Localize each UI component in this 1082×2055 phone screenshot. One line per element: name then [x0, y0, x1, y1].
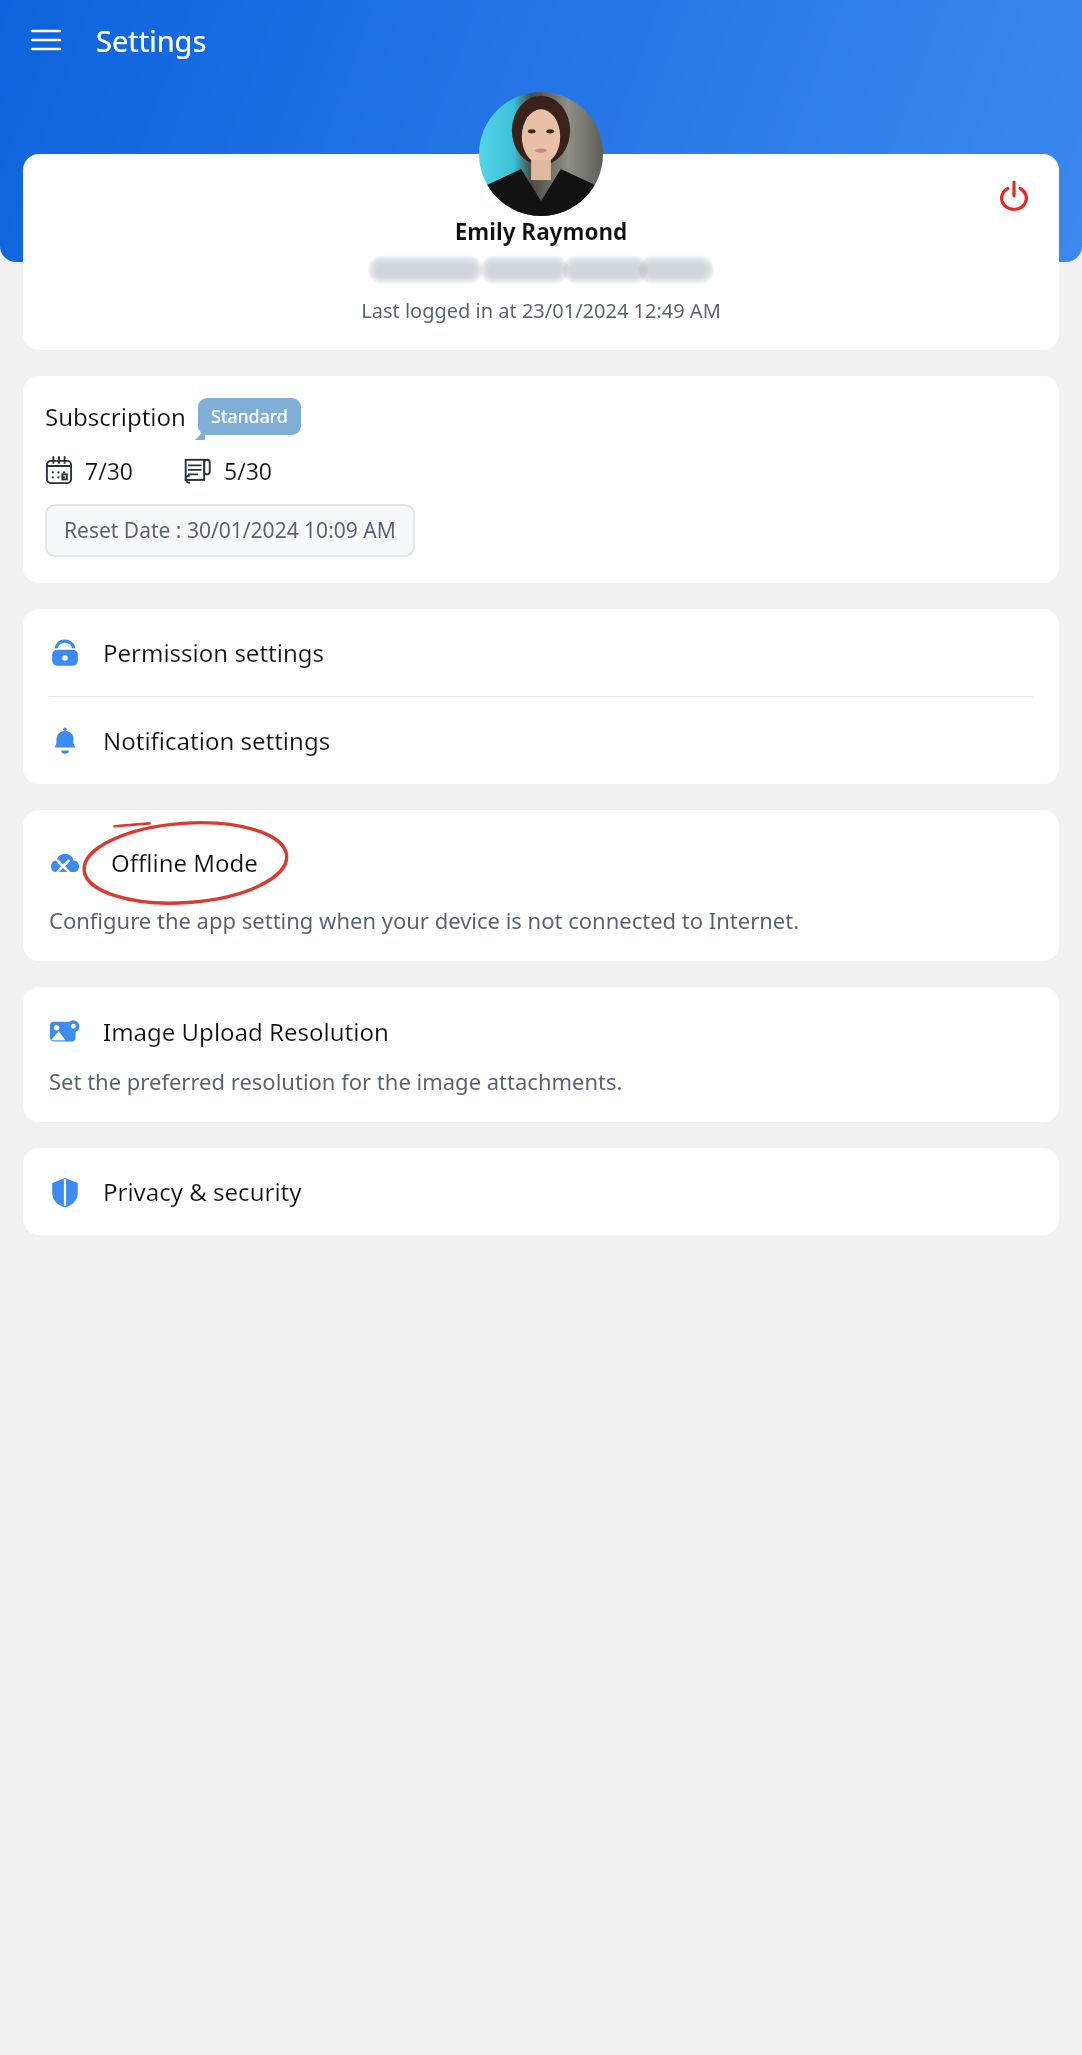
staticText: Set the preferred resolution for the ima…: [49, 1066, 623, 1096]
staticText: Last logged in at 23/01/2024 12:49 AM: [23, 297, 1059, 324]
button[interactable]: Emily Raymond: [23, 154, 1059, 350]
staticText: Image Upload Resolution: [103, 1015, 389, 1048]
button[interactable]: Privacy & security: [23, 1148, 1059, 1235]
staticText: 7/30: [85, 455, 134, 486]
button[interactable]: Notification settings: [23, 697, 1059, 784]
staticText: Permission settings: [103, 636, 325, 669]
button[interactable]: Log out: [987, 170, 1041, 224]
staticText: Subscription: [45, 400, 186, 433]
staticText: Notification settings: [103, 724, 331, 757]
staticText: 5/30: [224, 455, 273, 486]
staticText: Reset Date : 30/01/2024 10:09 AM: [64, 516, 396, 545]
button[interactable]: Offline Mode: [23, 810, 1059, 961]
button[interactable]: [479, 92, 603, 216]
button[interactable]: Image Upload Resolution: [23, 987, 1059, 1122]
button[interactable]: Permission settings: [23, 609, 1059, 696]
staticText: Privacy & security: [103, 1175, 302, 1208]
staticText: Offline Mode: [111, 846, 258, 879]
staticText: Standard: [211, 404, 288, 429]
staticText: Settings: [96, 21, 207, 60]
button[interactable]: Open navigation menu: [18, 12, 74, 68]
staticText: Emily Raymond: [23, 216, 1059, 247]
button[interactable]: Subscription: [23, 376, 1059, 583]
staticText: Configure the app setting when your devi…: [49, 905, 800, 935]
